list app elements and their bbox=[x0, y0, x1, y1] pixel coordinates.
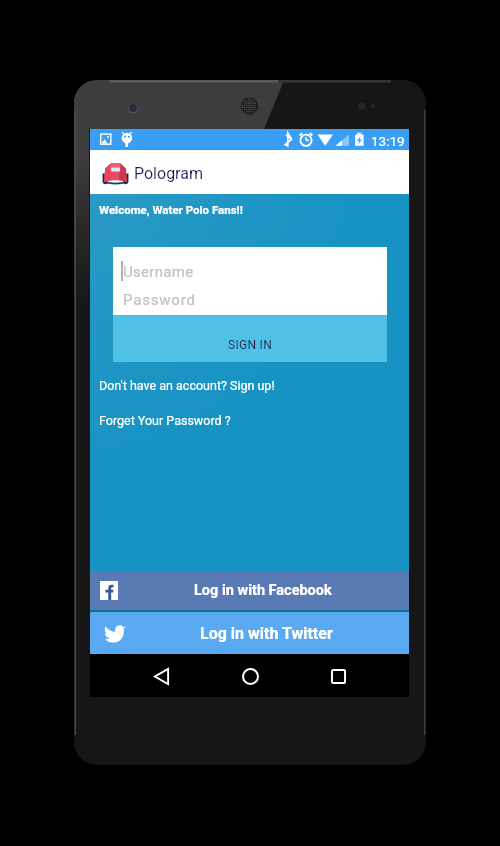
button[interactable]: Recent apps bbox=[316, 660, 361, 692]
staticText: Password bbox=[123, 291, 196, 309]
staticText: Username bbox=[123, 263, 194, 281]
staticText: Don't have an account? Sign up! bbox=[99, 378, 275, 393]
staticText: Welcome, Water Polo Fans!! bbox=[99, 203, 243, 216]
button[interactable]: Forget Your Password ? bbox=[96, 410, 234, 431]
button[interactable]: SIGN IN bbox=[113, 315, 387, 362]
staticText: Log in with Facebook bbox=[194, 582, 332, 599]
button[interactable]: Log in with Facebook bbox=[90, 571, 409, 610]
staticText: Pologram bbox=[134, 164, 203, 183]
staticText: 13:19 bbox=[371, 133, 405, 149]
staticText: SIGN IN bbox=[228, 338, 273, 352]
staticText: Forget Your Password ? bbox=[99, 413, 231, 428]
button[interactable]: Home bbox=[228, 660, 273, 692]
button[interactable]: Log in with Twitter bbox=[90, 612, 409, 654]
button[interactable]: Don't have an account? Sign up! bbox=[96, 375, 278, 396]
button[interactable]: Back bbox=[139, 660, 184, 692]
staticText: Log in with Twitter bbox=[200, 624, 333, 643]
